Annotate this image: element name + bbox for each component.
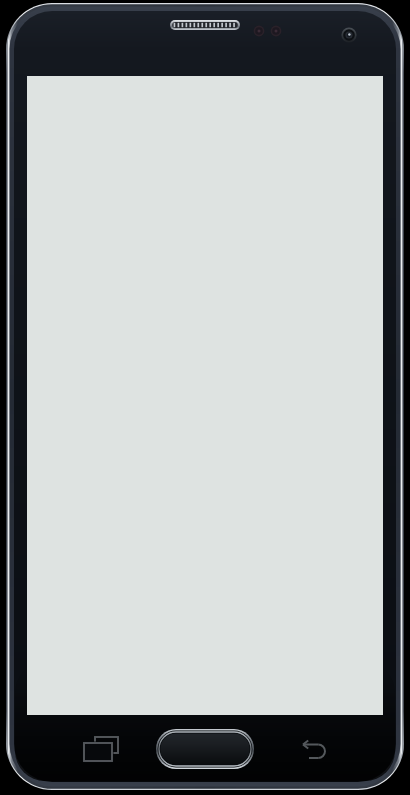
- button[interactable]: Recent apps: [74, 726, 126, 772]
- button[interactable]: Back: [288, 726, 340, 772]
- button[interactable]: Home: [155, 728, 255, 770]
